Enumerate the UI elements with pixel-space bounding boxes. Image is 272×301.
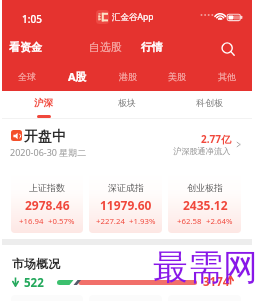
button[interactable]: Search (216, 37, 240, 61)
staticText: 科创板 (196, 97, 223, 108)
button[interactable]: 科创板 (188, 91, 230, 119)
button[interactable]: 看资金 (9, 40, 42, 54)
button[interactable]: 行情 (141, 40, 163, 54)
staticText: 市场概况 (12, 256, 60, 271)
staticText: 创业板指 (187, 182, 223, 193)
button[interactable]: 全球 (18, 71, 36, 82)
staticText: 3174 (203, 274, 230, 290)
staticText: +227.24 (96, 216, 125, 227)
staticText: 2978.46 (25, 197, 70, 213)
staticText: 2.77亿 (201, 132, 231, 146)
staticText: 最需网 (153, 245, 258, 289)
staticText: +16.94 (19, 216, 44, 227)
staticText: +2.64% (206, 216, 233, 227)
button[interactable]: 上证指数 (11, 172, 83, 233)
staticText: 11979.60 (100, 197, 152, 213)
staticText: 深证成指 (108, 182, 144, 193)
staticText: +62.58 (177, 216, 202, 227)
staticText: 2020-06-30 星期二 (10, 146, 87, 158)
button[interactable]: 其他 (218, 71, 236, 82)
button[interactable]: A股 (68, 69, 87, 84)
staticText: 沪深股通净流入 (173, 146, 231, 156)
staticText: 汇金谷App (112, 11, 154, 23)
button[interactable]: 自选股 (89, 40, 122, 54)
button[interactable]: 美股 (168, 71, 186, 82)
staticText: 522 (24, 275, 44, 291)
staticText: +0.57% (48, 216, 75, 227)
staticText: 板块 (118, 97, 136, 108)
button[interactable]: 深证成指 (89, 172, 162, 233)
button[interactable]: 港股 (119, 71, 137, 82)
staticText: 沪深 (34, 97, 53, 109)
staticText: 上证指数 (29, 182, 65, 193)
button[interactable]: 板块 (106, 91, 148, 119)
staticText: 1:05 (22, 12, 42, 26)
button[interactable]: 开盘中 (24, 128, 66, 146)
button[interactable]: 2.77亿 (160, 132, 242, 156)
staticText: +1.93% (129, 216, 156, 227)
staticText: 2435.12 (183, 197, 228, 213)
button[interactable]: 创业板指 (168, 172, 241, 233)
button[interactable]: 沪深 (22, 91, 64, 119)
